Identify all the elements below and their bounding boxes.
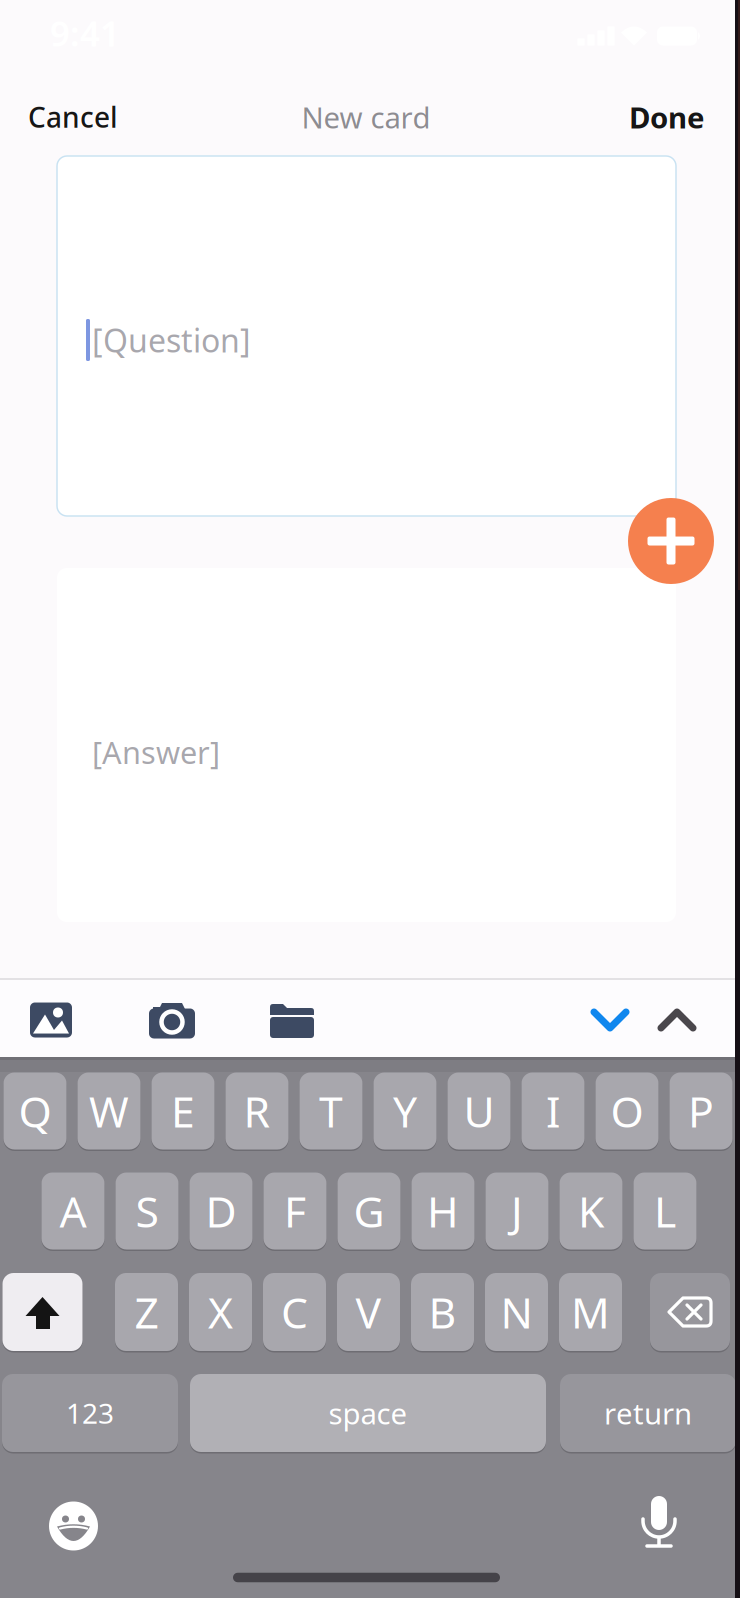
button[interactable]: J xyxy=(485,1171,548,1251)
staticText: N xyxy=(500,1284,532,1340)
button[interactable]: [Answer] xyxy=(57,568,676,922)
button[interactable]: R xyxy=(225,1071,288,1151)
staticText: L xyxy=(654,1183,676,1239)
staticText: Y xyxy=(393,1083,417,1139)
button[interactable]: space xyxy=(190,1372,546,1453)
button[interactable]: Done xyxy=(629,97,705,136)
staticText: I xyxy=(546,1083,560,1139)
button[interactable]: U xyxy=(447,1071,510,1151)
staticText: Q xyxy=(18,1083,51,1139)
button[interactable]: W xyxy=(77,1071,140,1151)
button[interactable]: O xyxy=(595,1071,658,1151)
button[interactable]: K xyxy=(559,1171,622,1251)
staticText: E xyxy=(171,1083,195,1139)
button[interactable]: return xyxy=(560,1372,736,1453)
staticText: S xyxy=(135,1183,158,1239)
staticText: New card xyxy=(301,97,430,136)
staticText: D xyxy=(205,1183,236,1239)
button[interactable]: P xyxy=(669,1071,732,1151)
button[interactable]: H xyxy=(411,1171,474,1251)
staticText: M xyxy=(571,1284,610,1340)
button[interactable]: A xyxy=(41,1171,104,1251)
staticText: Z xyxy=(134,1284,158,1340)
staticText: O xyxy=(610,1083,643,1139)
button[interactable]: S xyxy=(115,1171,178,1251)
button[interactable]: Dismiss keyboard xyxy=(590,1006,630,1034)
button[interactable]: E xyxy=(151,1071,214,1151)
button[interactable]: Cancel xyxy=(28,98,118,136)
staticText: C xyxy=(281,1284,308,1340)
button[interactable]: Camera xyxy=(144,998,200,1042)
button[interactable]: V xyxy=(337,1271,400,1352)
staticText: [Answer] xyxy=(92,732,220,772)
button[interactable]: G xyxy=(337,1171,400,1251)
button[interactable]: M xyxy=(559,1271,622,1352)
staticText: Done xyxy=(629,97,705,136)
staticText: U xyxy=(463,1083,494,1139)
button[interactable]: I xyxy=(521,1071,584,1151)
staticText: A xyxy=(59,1183,86,1239)
staticText: Cancel xyxy=(28,98,118,136)
button[interactable]: Previous field xyxy=(657,1006,697,1034)
staticText: H xyxy=(427,1183,459,1239)
button[interactable]: Y xyxy=(373,1071,436,1151)
button[interactable]: Dictation xyxy=(638,1497,680,1549)
button[interactable]: B xyxy=(411,1271,474,1352)
button[interactable]: 123 xyxy=(2,1372,178,1453)
staticText: J xyxy=(511,1183,523,1239)
button[interactable]: X xyxy=(189,1271,252,1352)
staticText: T xyxy=(319,1083,343,1139)
staticText: G xyxy=(353,1183,384,1239)
button[interactable]: Q xyxy=(3,1071,66,1151)
staticText: W xyxy=(89,1083,129,1139)
button[interactable]: T xyxy=(299,1071,362,1151)
button[interactable]: Z xyxy=(115,1271,178,1352)
button[interactable]: Emoji xyxy=(49,1501,98,1550)
button[interactable]: Add card xyxy=(628,498,714,584)
button[interactable]: [Question] xyxy=(57,156,676,516)
button[interactable]: F xyxy=(263,1171,326,1251)
staticText: V xyxy=(355,1284,381,1340)
button[interactable]: Delete xyxy=(650,1271,730,1352)
staticText: F xyxy=(284,1183,306,1239)
button[interactable]: Photo library xyxy=(29,1000,73,1040)
staticText: space xyxy=(328,1393,407,1432)
staticText: [Question] xyxy=(92,319,251,361)
staticText: return xyxy=(604,1393,692,1432)
button[interactable]: Shift xyxy=(2,1271,82,1352)
staticText: 123 xyxy=(66,1394,114,1432)
button[interactable]: N xyxy=(485,1271,548,1352)
staticText: K xyxy=(578,1183,604,1239)
button[interactable]: C xyxy=(263,1271,326,1352)
staticText: R xyxy=(243,1083,270,1139)
staticText: X xyxy=(208,1284,233,1340)
staticText: P xyxy=(688,1083,714,1139)
button[interactable]: Files xyxy=(268,1000,316,1040)
button[interactable]: D xyxy=(189,1171,252,1251)
button[interactable]: L xyxy=(633,1171,696,1251)
staticText: B xyxy=(428,1284,456,1340)
